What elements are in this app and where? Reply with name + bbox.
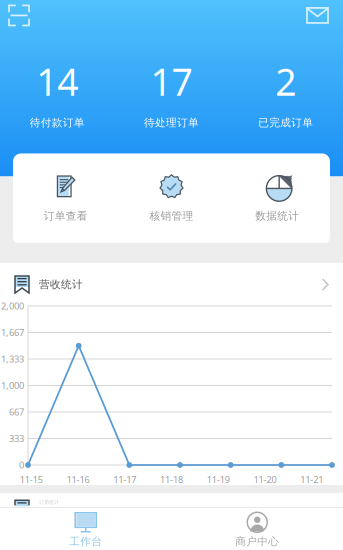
staticText: 营收统计 [39,278,83,291]
staticText: 待付款订单 [30,116,85,129]
staticText: 11-19 [207,473,230,486]
button[interactable]: 工作台 [0,512,171,548]
button[interactable]: 营收统计 [0,263,343,306]
staticText: 0 [19,459,24,471]
button[interactable]: 商户中心 [171,512,343,548]
staticText: 11-15 [20,473,43,486]
staticText: 1,000 [1,379,24,392]
button[interactable]: Messages [306,0,343,32]
staticText: 商户中心 [235,535,279,548]
staticText: 核销管理 [149,209,193,222]
button[interactable]: 订单查看 [13,173,119,222]
staticText: 数据统计 [255,209,299,222]
staticText: 667 [9,406,24,418]
staticText: 11-20 [253,473,276,486]
staticText: 1,667 [1,326,24,339]
staticText: 14 [36,56,78,106]
staticText: 2,000 [1,300,24,312]
staticText: 待处理订单 [144,116,199,129]
staticText: 11-18 [160,473,183,486]
staticText: 已完成订单 [258,116,313,129]
button[interactable]: 核销管理 [119,173,224,222]
button[interactable]: Scan code [0,0,29,32]
staticText: 17 [150,56,192,106]
staticText: 1,333 [1,353,24,365]
staticText: 订单查看 [44,209,88,222]
button[interactable]: 数据统计 [224,173,330,222]
staticText: 333 [9,432,24,445]
staticText: 11-21 [300,473,323,486]
staticText: 2 [275,56,296,106]
staticText: 工作台 [69,535,102,548]
staticText: 订单统计 [39,499,59,506]
button[interactable]: 订单统计 [0,499,343,506]
staticText: 11-16 [67,473,90,486]
staticText: 11-17 [113,473,136,486]
